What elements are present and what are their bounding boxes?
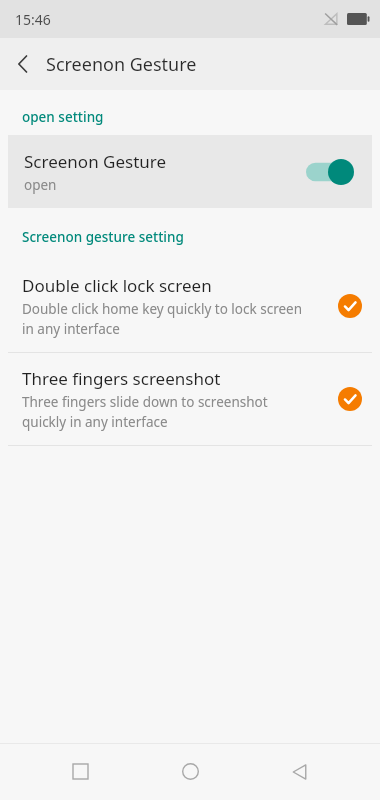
button[interactable]: Back — [270, 743, 330, 800]
button[interactable]: Enabled — [338, 387, 362, 411]
staticText: Double click home key quickly to lock sc… — [22, 300, 303, 338]
button[interactable]: Three fingers screenshot — [0, 353, 380, 445]
staticText: Double click lock screen — [22, 274, 212, 297]
button[interactable]: Back — [0, 38, 46, 90]
button[interactable]: Home — [160, 743, 220, 800]
button[interactable]: Screenon Gesture — [8, 135, 372, 208]
staticText: Screenon Gesture — [46, 52, 197, 77]
button[interactable]: Double click lock screen — [0, 260, 380, 352]
staticText: 15:46 — [15, 10, 51, 29]
button[interactable]: Enabled — [338, 294, 362, 318]
staticText: Screenon gesture setting — [22, 228, 184, 246]
button[interactable]: Recents — [50, 743, 110, 800]
staticText: Three fingers slide down to screenshot q… — [22, 393, 268, 431]
staticText: open setting — [22, 108, 104, 126]
staticText: open — [24, 176, 57, 194]
staticText: Three fingers screenshot — [22, 367, 221, 390]
staticText: Screenon Gesture — [24, 150, 167, 173]
